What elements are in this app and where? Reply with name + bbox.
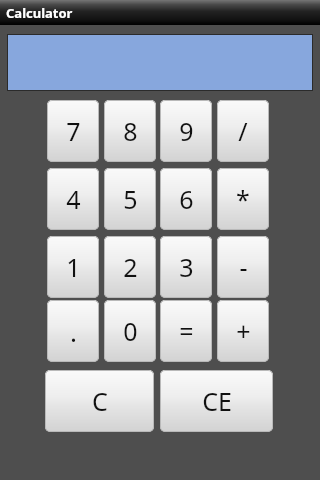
staticText: = [179, 314, 194, 348]
button[interactable]: 0 [104, 300, 156, 362]
staticText: 9 [179, 114, 194, 148]
staticText: Calculator [6, 4, 73, 22]
button[interactable]: = [160, 300, 212, 362]
button[interactable]: 2 [104, 236, 156, 298]
button[interactable]: 1 [47, 236, 99, 298]
button[interactable]: + [217, 300, 269, 362]
staticText: / [238, 114, 248, 148]
staticText: 7 [66, 114, 81, 148]
button[interactable]: . [47, 300, 99, 362]
button[interactable]: 5 [104, 168, 156, 230]
button[interactable]: * [217, 168, 269, 230]
staticText: C [92, 384, 108, 418]
staticText: . [70, 314, 77, 349]
button[interactable]: 6 [160, 168, 212, 230]
staticText: 4 [66, 182, 81, 216]
staticText: 5 [123, 182, 138, 216]
button[interactable]: 8 [104, 100, 156, 162]
button[interactable]: C [45, 370, 154, 432]
staticText: 1 [66, 250, 81, 284]
button[interactable]: - [217, 236, 269, 298]
staticText: + [236, 314, 251, 348]
button[interactable]: 7 [47, 100, 99, 162]
staticText: * [236, 182, 250, 216]
staticText: 2 [123, 250, 138, 284]
button[interactable]: 4 [47, 168, 99, 230]
staticText: - [239, 250, 248, 284]
staticText: CE [202, 384, 232, 418]
button[interactable]: / [217, 100, 269, 162]
staticText: 6 [179, 182, 194, 216]
staticText: 0 [123, 314, 138, 348]
button[interactable]: CE [160, 370, 273, 432]
button[interactable]: 9 [160, 100, 212, 162]
button[interactable]: 3 [160, 236, 212, 298]
staticText: 8 [123, 114, 138, 148]
staticText: 3 [179, 250, 194, 284]
